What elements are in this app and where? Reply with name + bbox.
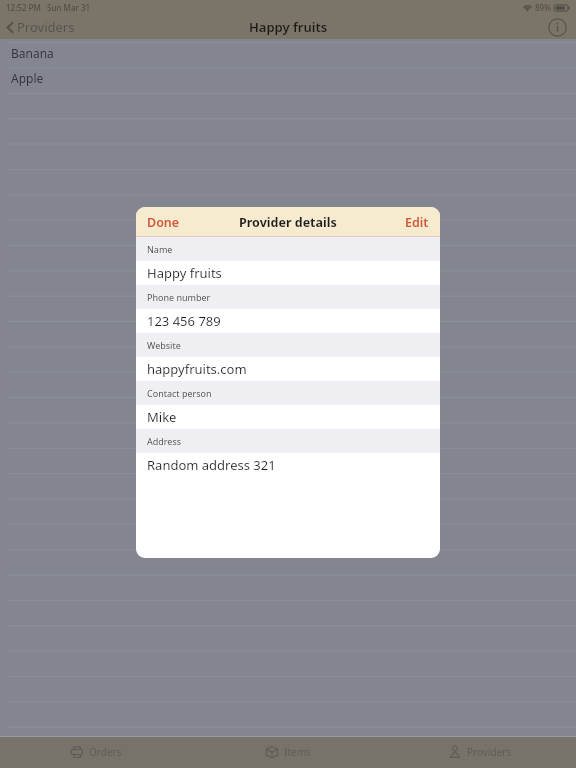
button[interactable]: Random address 321 — [136, 453, 440, 477]
button[interactable]: 123 456 789 — [136, 309, 440, 333]
staticText: Banana — [11, 45, 54, 61]
button[interactable]: Providers — [384, 736, 576, 768]
button[interactable]: Edit — [394, 209, 440, 236]
button[interactable]: Providers — [0, 15, 83, 39]
staticText: Happy fruits — [147, 264, 222, 282]
staticText: 123 456 789 — [147, 312, 221, 330]
staticText: Edit — [405, 214, 429, 231]
staticText: Apple — [11, 70, 44, 86]
staticText: Website — [147, 339, 181, 351]
staticText: Happy fruits — [249, 18, 328, 36]
button[interactable]: Mike — [136, 405, 440, 429]
staticText: 89% — [535, 2, 551, 13]
button[interactable]: Happy fruits — [136, 261, 440, 285]
staticText: Done — [147, 214, 180, 231]
staticText: Mike — [147, 408, 177, 426]
staticText: Provider details — [239, 214, 337, 231]
button[interactable]: Info — [546, 16, 568, 38]
staticText: Items — [284, 745, 311, 759]
staticText: Phone number — [147, 291, 211, 303]
staticText: happyfruits.com — [147, 360, 247, 378]
button[interactable]: Items — [192, 736, 384, 768]
button[interactable]: Done — [136, 209, 191, 236]
staticText: 12:52 PM Sun Mar 31 — [6, 2, 91, 13]
button[interactable]: happyfruits.com — [136, 357, 440, 381]
staticText: Providers — [467, 745, 512, 759]
staticText: Providers — [17, 18, 75, 36]
staticText: Address — [147, 435, 182, 447]
staticText: Contact person — [147, 387, 212, 399]
staticText: Orders — [89, 745, 122, 759]
staticText: Random address 321 — [147, 456, 276, 474]
button[interactable]: Orders — [0, 736, 192, 768]
staticText: Name — [147, 243, 173, 255]
